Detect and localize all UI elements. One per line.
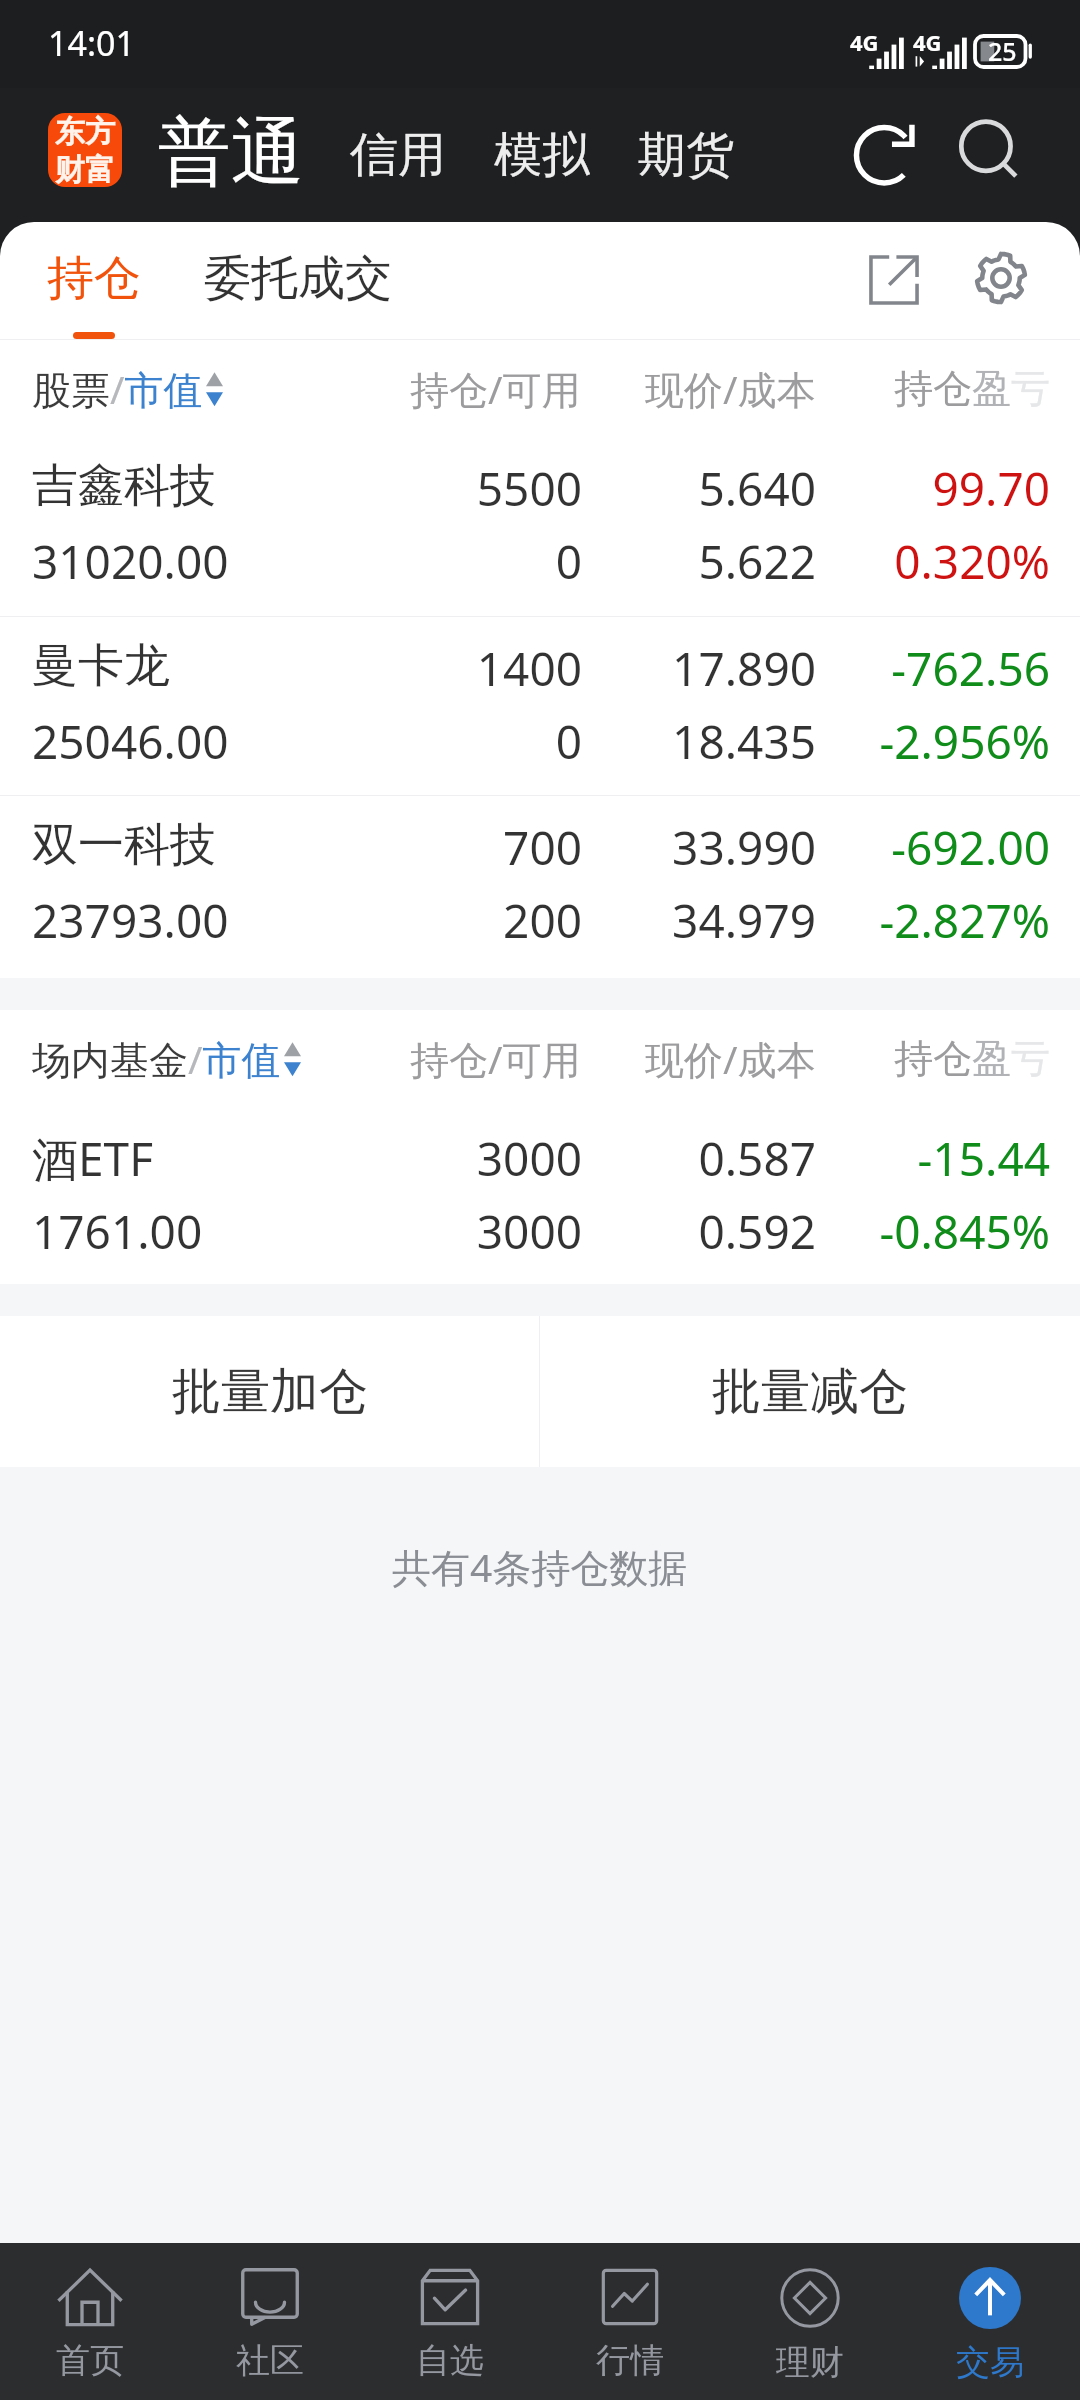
staticText: 双一科技 (32, 816, 216, 874)
button[interactable]: 信用 (347, 98, 449, 208)
staticText: 99.70 (750, 457, 1050, 515)
staticText: 场内基金/市值 (32, 1032, 281, 1085)
button[interactable]: 酒ETF (0, 1107, 1080, 1284)
button[interactable]: Search (944, 105, 1040, 201)
staticText: 普通 (158, 107, 304, 199)
staticText: 持仓盈亏 (894, 1034, 1050, 1083)
staticText: 模拟 (494, 125, 590, 185)
button[interactable]: 模拟 (491, 98, 593, 208)
button[interactable]: 交易 (900, 2243, 1080, 2400)
button[interactable]: 理财 (720, 2243, 900, 2400)
staticText: 25 (988, 34, 1017, 67)
button[interactable]: 期货 (635, 98, 737, 208)
staticText: 曼卡龙 (32, 637, 170, 695)
staticText: 理财 (776, 2341, 844, 2384)
staticText: 5.622 (516, 530, 816, 588)
button[interactable]: 行情 (540, 2243, 720, 2400)
staticText: 5.640 (516, 457, 816, 515)
button[interactable]: Refresh (840, 105, 936, 201)
staticText: 财富 (55, 151, 115, 187)
staticText: 3000 (282, 1127, 582, 1185)
staticText: 3000 (282, 1200, 582, 1258)
staticText: 0.587 (516, 1127, 816, 1185)
staticText: 交易 (956, 2341, 1024, 2384)
staticText: 社区 (236, 2339, 304, 2382)
staticText: 持仓 (47, 249, 141, 308)
staticText: 信用 (350, 125, 446, 185)
button[interactable]: 普通 (152, 98, 312, 208)
button[interactable]: Share (846, 232, 942, 328)
staticText: 0.592 (516, 1200, 816, 1258)
staticText: 共有4条持仓数据 (392, 1540, 688, 1593)
staticText: 0 (282, 530, 582, 588)
staticText: 23793.00 (32, 889, 229, 947)
button[interactable]: Settings (953, 230, 1049, 326)
button[interactable]: 社区 (180, 2243, 360, 2400)
staticText: 31020.00 (32, 530, 229, 588)
staticText: 14:01 (48, 20, 135, 66)
staticText: 行情 (596, 2339, 664, 2382)
staticText: 股票/市值 (32, 362, 203, 415)
staticText: 批量加仓 (172, 1361, 368, 1423)
staticText: 持仓/可用 (410, 362, 581, 415)
staticText: -15.44 (750, 1127, 1050, 1185)
staticText: -762.56 (750, 637, 1050, 695)
button[interactable]: 批量减仓 (540, 1316, 1080, 1467)
staticText: 17.890 (516, 637, 816, 695)
button[interactable]: 持仓 (20, 222, 168, 339)
staticText: 委托成交 (204, 249, 392, 308)
staticText: -2.827% (750, 889, 1050, 947)
staticText: -2.956% (750, 710, 1050, 768)
staticText: 18.435 (516, 710, 816, 768)
staticText: 吉鑫科技 (32, 457, 216, 515)
button[interactable]: 股票/市值 (32, 362, 223, 415)
staticText: 1761.00 (32, 1200, 203, 1258)
staticText: 酒ETF (32, 1127, 154, 1185)
button[interactable]: 委托成交 (180, 222, 416, 339)
button[interactable]: 批量加仓 (0, 1316, 539, 1467)
staticText: 0 (282, 710, 582, 768)
staticText: 期货 (638, 125, 734, 185)
staticText: 700 (282, 816, 582, 874)
staticText: 批量减仓 (712, 1361, 908, 1423)
staticText: 5500 (282, 457, 582, 515)
button[interactable]: 东方财富 (48, 113, 122, 187)
staticText: 0.320% (750, 530, 1050, 588)
staticText: -692.00 (750, 816, 1050, 874)
staticText: 现价/成本 (645, 362, 816, 415)
staticText: 首页 (56, 2339, 124, 2382)
staticText: 持仓/可用 (410, 1032, 581, 1085)
staticText: -0.845% (750, 1200, 1050, 1258)
staticText: 东方 (55, 113, 115, 151)
button[interactable]: 吉鑫科技 (0, 437, 1080, 616)
staticText: 33.990 (516, 816, 816, 874)
button[interactable]: 场内基金/市值 (32, 1032, 301, 1085)
staticText: 1400 (282, 637, 582, 695)
staticText: 4G (913, 27, 942, 57)
button[interactable]: 首页 (0, 2243, 180, 2400)
button[interactable]: 曼卡龙 (0, 617, 1080, 795)
staticText: 34.979 (516, 889, 816, 947)
staticText: 200 (282, 889, 582, 947)
staticText: 现价/成本 (645, 1032, 816, 1085)
staticText: 自选 (416, 2339, 484, 2382)
staticText: 4G (850, 27, 879, 57)
staticText: 25046.00 (32, 710, 229, 768)
button[interactable]: 自选 (360, 2243, 540, 2400)
button[interactable]: 双一科技 (0, 796, 1080, 978)
staticText: 持仓盈亏 (894, 364, 1050, 413)
